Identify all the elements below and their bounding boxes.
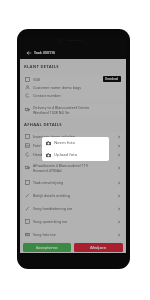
- staticText: SGB: [33, 77, 103, 82]
- button[interactable]: Taak omschrijving: [22, 176, 124, 189]
- staticText: Upload foto: [54, 152, 78, 158]
- button[interactable]: Handtekening: [22, 150, 124, 159]
- staticText: Taak 300116: [34, 50, 56, 55]
- staticText: Handtekening: [33, 152, 116, 157]
- staticText: Delivery to 4 Blancusdreef Centre: [33, 105, 90, 110]
- staticText: Taak omschrijving: [33, 180, 116, 185]
- button[interactable]: Back: [25, 49, 33, 57]
- staticText: Bekijk details melding: [33, 193, 116, 198]
- staticText: Voeg opmerking toe: [33, 219, 116, 224]
- button[interactable]: Voeg foto toe: [22, 228, 124, 241]
- staticText: KLANT DETAILS: [24, 64, 59, 70]
- button[interactable]: Voeg opmerking toe: [22, 215, 124, 228]
- staticText: Customer name: demo bags: [33, 85, 121, 90]
- staticText: Foto's uploaden: [33, 143, 116, 148]
- staticText: Inventaris items ophalen: [33, 134, 116, 139]
- button[interactable]: Afhaallocatie 4 Blancusdreef 119: [22, 159, 124, 176]
- button[interactable]: Delivery to 4 Blancusdreef Centre: [22, 104, 124, 115]
- staticText: Download: [105, 77, 119, 81]
- button[interactable]: Customer name: demo bags: [22, 83, 124, 91]
- staticText: Contact number:: [33, 93, 121, 98]
- staticText: Roosend 4700Ad: [33, 168, 62, 173]
- button[interactable]: SGB: [22, 75, 124, 83]
- button[interactable]: Contact number:: [22, 91, 124, 99]
- staticText: Afhaallocatie 4 Blancusdreef 119: [33, 163, 88, 168]
- staticText: Voeg foto toe: [33, 232, 116, 237]
- staticText: Westland 1028 NG Str: [33, 110, 70, 115]
- staticText: Accepteren: [36, 245, 58, 250]
- staticText: Neem foto: [54, 140, 75, 146]
- button[interactable]: Bekijk details melding: [22, 189, 124, 202]
- button[interactable]: Accepteren: [23, 243, 71, 252]
- staticText: AFHAAL DETAILS: [24, 122, 62, 128]
- button[interactable]: Foto's uploaden: [22, 141, 124, 150]
- staticText: Afwijzen: [90, 245, 107, 250]
- button[interactable]: Neem foto: [42, 137, 109, 149]
- button[interactable]: Upload foto: [42, 149, 109, 161]
- staticText: Voeg handtekening toe: [33, 206, 116, 211]
- button[interactable]: Inventaris items ophalen: [22, 132, 124, 141]
- button[interactable]: Afwijzen: [74, 243, 123, 252]
- button[interactable]: Voeg handtekening toe: [22, 202, 124, 215]
